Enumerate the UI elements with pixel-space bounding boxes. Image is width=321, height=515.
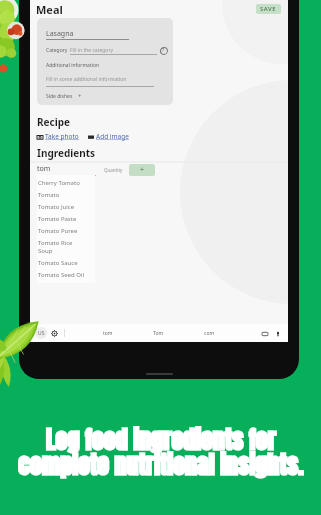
- button[interactable]: Tomato Paste: [38, 213, 95, 225]
- button[interactable]: Take photo: [37, 132, 79, 141]
- staticText: US: [38, 330, 45, 337]
- staticText: Side dishes: [46, 93, 73, 100]
- staticText: Tomato Juice: [38, 203, 75, 211]
- staticText: Meal: [36, 2, 63, 17]
- button[interactable]: Tomato Rice Soup: [38, 237, 95, 257]
- staticText: Fill in some additional information: [46, 76, 127, 83]
- staticText: Tomato Sauce: [38, 259, 78, 267]
- button[interactable]: Add image: [88, 132, 129, 141]
- button[interactable]: SAVE: [256, 4, 281, 14]
- staticText: ?: [162, 47, 165, 54]
- staticText: Cherry Tomato: [38, 179, 80, 187]
- staticText: SAVE: [260, 5, 277, 13]
- button[interactable]: Tomato Puree: [38, 225, 95, 237]
- button[interactable]: Tomato Sauce: [38, 257, 95, 269]
- button[interactable]: Add ingredient: [129, 164, 155, 176]
- staticText: Recipe: [37, 115, 70, 129]
- staticText: complete nutritional insights.: [0, 447, 321, 483]
- staticText: com: [204, 330, 215, 337]
- button[interactable]: Settings: [49, 328, 60, 339]
- staticText: Quantity: [104, 167, 123, 173]
- staticText: tom: [37, 164, 51, 174]
- button[interactable]: Keyboard: [259, 328, 270, 339]
- button[interactable]: Cherry Tomato: [38, 177, 95, 189]
- staticText: +: [140, 165, 145, 175]
- staticText: +: [78, 92, 82, 100]
- button[interactable]: Tomato Juice: [38, 201, 95, 213]
- staticText: Log food ingredients for: [0, 422, 321, 458]
- staticText: Tom: [153, 330, 164, 337]
- staticText: Tomato Puree: [38, 227, 78, 235]
- staticText: Fill in the category: [70, 47, 114, 54]
- staticText: Additional information: [46, 62, 100, 69]
- staticText: tom: [103, 330, 113, 337]
- staticText: Add image: [96, 132, 129, 141]
- button[interactable]: US: [35, 327, 47, 339]
- staticText: Tomato Paste: [38, 215, 77, 223]
- button[interactable]: Tomato: [38, 189, 95, 201]
- staticText: Tomato Seed Oil: [38, 271, 84, 279]
- staticText: Tomato Rice Soup: [38, 239, 73, 255]
- staticText: Tomato: [38, 191, 60, 199]
- button[interactable]: Help: [159, 46, 168, 55]
- button[interactable]: Tomato Seed Oil: [38, 269, 95, 281]
- staticText: Ingredients: [37, 146, 96, 160]
- staticText: Category: [46, 47, 68, 54]
- staticText: Take photo: [45, 132, 79, 141]
- button[interactable]: Voice input: [272, 328, 283, 339]
- staticText: Lasagna: [46, 29, 74, 39]
